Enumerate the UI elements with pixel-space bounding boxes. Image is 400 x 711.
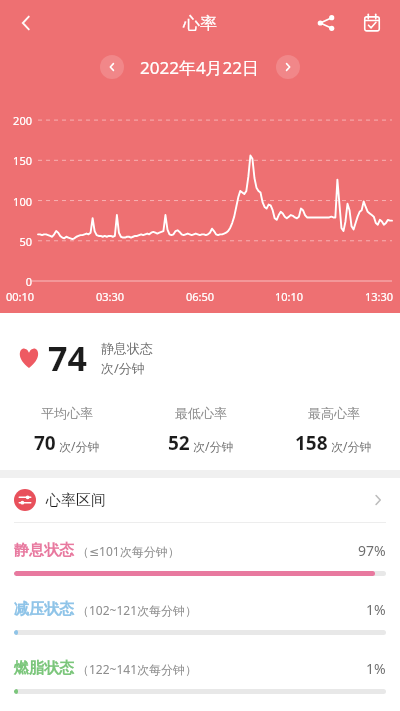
staticText: 1%	[366, 600, 386, 619]
staticText: 次/分钟	[59, 438, 100, 454]
button[interactable]: 心率区间	[0, 478, 400, 522]
button[interactable]: Share	[306, 3, 346, 43]
staticText: 静息状态	[14, 541, 74, 560]
button[interactable]: Calendar	[352, 3, 392, 43]
staticText: 1%	[366, 659, 386, 678]
staticText: 74	[48, 335, 87, 381]
button[interactable]: Next day	[276, 55, 300, 79]
staticText: 70	[34, 430, 56, 456]
staticText: 150	[13, 153, 32, 168]
staticText: 158	[295, 430, 328, 456]
staticText: 最低心率	[175, 405, 227, 421]
button[interactable]: 静息状态	[0, 541, 400, 576]
button[interactable]: Back	[6, 3, 46, 43]
staticText: 00:10	[6, 289, 35, 304]
staticText: 200	[13, 113, 32, 128]
staticText: 次/分钟	[101, 359, 145, 377]
staticText: 静息状态	[101, 340, 153, 356]
button[interactable]: 燃脂状态	[0, 659, 400, 694]
staticText: 52	[168, 430, 190, 456]
button[interactable]: 减压状态	[0, 600, 400, 635]
staticText: 100	[13, 194, 32, 209]
staticText: （122~141次每分钟）	[77, 661, 198, 677]
staticText: 心率区间	[46, 491, 106, 510]
staticText: （≤101次每分钟）	[77, 543, 180, 559]
staticText: 次/分钟	[193, 438, 234, 454]
staticText: 心率	[183, 13, 217, 34]
staticText: 次/分钟	[331, 438, 372, 454]
staticText: 13:30	[365, 289, 394, 304]
staticText: 50	[19, 234, 32, 249]
staticText: 97%	[358, 541, 386, 560]
staticText: （102~121次每分钟）	[77, 602, 198, 618]
staticText: 燃脂状态	[14, 659, 74, 678]
staticText: 03:30	[96, 289, 125, 304]
staticText: 0	[25, 274, 32, 289]
staticText: 06:50	[186, 289, 215, 304]
button[interactable]: Previous day	[100, 55, 124, 79]
staticText: 平均心率	[41, 405, 93, 421]
staticText: 减压状态	[14, 600, 74, 619]
staticText: 最高心率	[308, 405, 360, 421]
staticText: 2022年4月22日	[140, 56, 260, 79]
staticText: 10:10	[275, 289, 304, 304]
